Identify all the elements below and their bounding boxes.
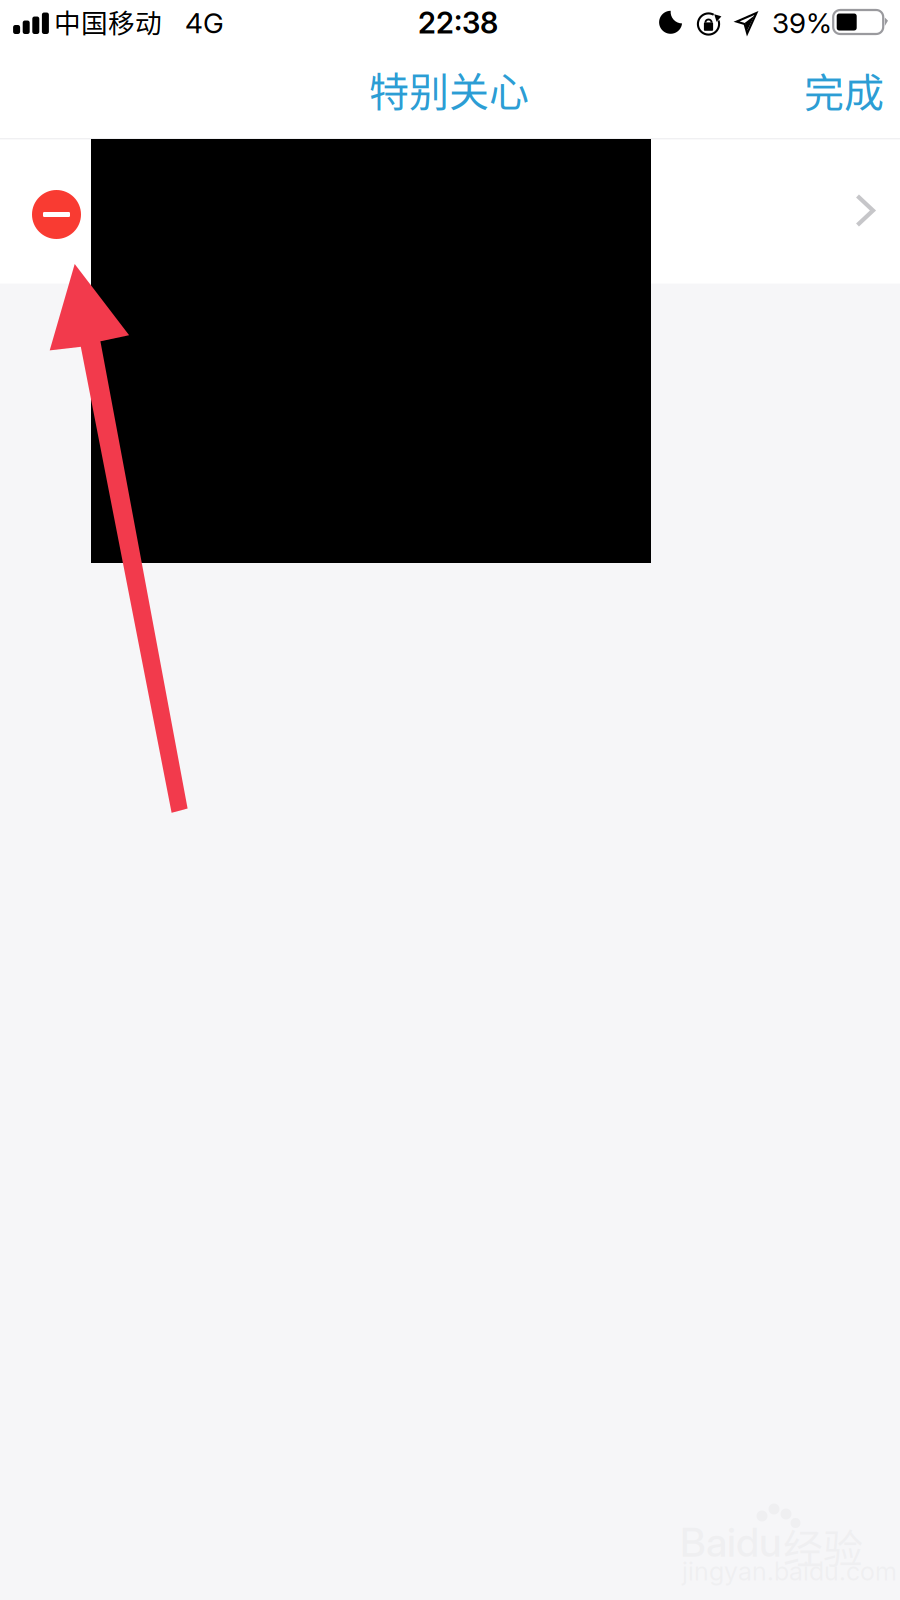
button[interactable]: 完成 (782, 56, 900, 138)
staticText: 22:38 (418, 5, 498, 40)
staticText: 4G (185, 6, 224, 40)
staticText: 39% (772, 6, 832, 40)
staticText: 中国移动 (54, 2, 162, 41)
staticText: 完成 (804, 61, 884, 119)
staticText: 特别关心 (369, 60, 529, 118)
button[interactable] (0, 139, 900, 283)
